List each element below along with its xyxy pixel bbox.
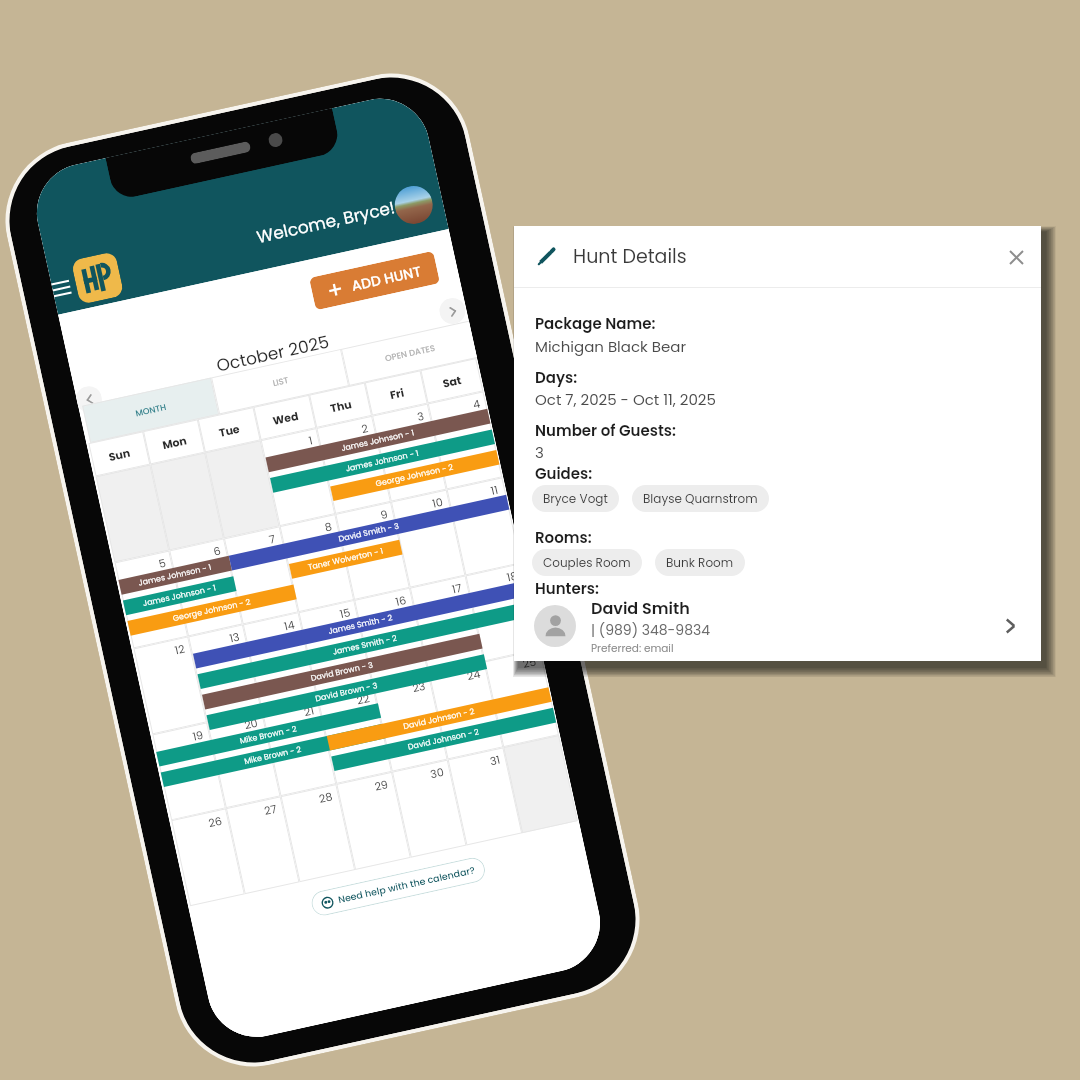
button[interactable]: Couples Room	[532, 549, 642, 576]
button[interactable]: Bryce Vogt	[532, 485, 619, 512]
button[interactable]: 21	[262, 698, 336, 796]
button[interactable]	[205, 440, 280, 538]
button[interactable]: 20	[207, 710, 281, 808]
button[interactable]: Bunk Room	[655, 549, 745, 576]
staticText: Wed	[271, 408, 300, 428]
button[interactable]: Need help with the calendar?	[309, 855, 487, 918]
staticText: James Johnson - 1	[340, 427, 416, 454]
button[interactable]: 22	[317, 686, 392, 784]
button[interactable]: 25	[484, 649, 559, 747]
button[interactable]: 28	[281, 784, 355, 882]
button[interactable]: 29	[336, 772, 411, 870]
button[interactable]: LIST	[211, 349, 349, 415]
button[interactable]: 3	[372, 403, 447, 502]
button[interactable]: 30	[392, 760, 467, 858]
button[interactable]: OPEN DATES	[341, 321, 477, 386]
button[interactable]: Blayse Quarnstrom	[632, 485, 769, 512]
button[interactable]: James Johnson - 1	[118, 556, 232, 595]
staticText: Taner Wolverton - 1	[307, 546, 385, 573]
staticText: 29	[373, 776, 390, 794]
button[interactable]: Close dialog	[999, 240, 1033, 274]
button[interactable]: David Johnson - 2	[331, 708, 556, 771]
button[interactable]: Next month	[437, 296, 468, 327]
button[interactable]: David Brown - 3	[206, 654, 487, 730]
staticText: 8	[323, 518, 333, 534]
button[interactable]: Previous month	[74, 384, 104, 414]
button[interactable]: Mike Brown - 2	[161, 724, 386, 787]
button[interactable]: 10	[391, 489, 465, 588]
button[interactable]: 23	[373, 674, 448, 772]
button[interactable]: David Johnson - 2	[327, 687, 552, 751]
staticText: Hunters:	[535, 578, 599, 599]
staticText: 26	[207, 812, 224, 830]
staticText: 28	[317, 788, 334, 806]
button[interactable]: 27	[226, 796, 299, 894]
button[interactable]: James Smith - 2	[193, 581, 528, 668]
button[interactable]: Home	[71, 251, 124, 305]
button[interactable]: George Johnson - 2	[127, 585, 297, 636]
button[interactable]: James Johnson - 1	[123, 576, 236, 615]
button[interactable]: 14	[243, 612, 317, 710]
staticText: 25	[521, 653, 538, 671]
staticText: David Brown - 3	[310, 659, 375, 684]
button[interactable]: Taner Wolverton - 1	[289, 540, 402, 579]
staticText: Mike Brown - 2	[243, 744, 303, 767]
staticText: 10	[431, 494, 445, 511]
staticText: 17	[450, 580, 463, 596]
button[interactable]: 5	[114, 550, 188, 648]
button[interactable]: 18	[465, 563, 540, 661]
staticText: 3	[416, 408, 426, 424]
staticText: OPEN DATES	[384, 342, 436, 364]
staticText: David Smith	[591, 597, 690, 619]
button[interactable]	[96, 464, 169, 562]
button[interactable]: 9	[335, 502, 410, 600]
staticText: Mike Brown - 2	[239, 723, 299, 747]
button[interactable]: 4	[428, 391, 502, 489]
button[interactable]: Open navigation menu	[49, 271, 79, 305]
button[interactable]: 16	[354, 588, 429, 686]
button[interactable]: 26	[171, 808, 245, 906]
staticText: Preferred: email	[591, 641, 674, 656]
button[interactable]: 8	[280, 514, 354, 612]
button[interactable]: 17	[410, 575, 484, 674]
button[interactable]: 13	[188, 624, 262, 722]
staticText: 21	[302, 702, 315, 719]
staticText: 23	[411, 678, 427, 695]
button[interactable]	[503, 735, 578, 833]
button[interactable]: 19	[152, 722, 226, 820]
button[interactable]: 6	[169, 538, 243, 636]
staticText: David Smith - 3	[338, 521, 400, 545]
staticText: Rooms:	[535, 527, 592, 548]
button[interactable]: 24	[429, 661, 503, 760]
staticText: Bryce Vogt	[543, 490, 608, 507]
button[interactable]: George Johnson - 2	[330, 450, 499, 501]
staticText: Hunt Details	[573, 243, 687, 270]
button[interactable]	[150, 452, 224, 550]
button[interactable]: David Smith	[534, 594, 1019, 658]
staticText: James Johnson - 1	[137, 562, 213, 589]
button[interactable]: James Johnson - 1	[270, 429, 495, 493]
button[interactable]: ADD HUNT	[309, 251, 440, 310]
button[interactable]: David Smith - 3	[229, 495, 509, 570]
button[interactable]: 11	[447, 477, 521, 575]
staticText: October 2025	[214, 329, 332, 378]
staticText: Michigan Black Bear	[535, 336, 686, 357]
button[interactable]: 12	[133, 636, 207, 734]
button[interactable]: Mike Brown - 2	[156, 703, 381, 767]
button[interactable]: David Brown - 3	[202, 634, 483, 709]
button[interactable]: 15	[298, 600, 373, 698]
staticText: Welcome, Bryce!	[254, 195, 397, 249]
staticText: 7	[267, 530, 278, 547]
staticText: 15	[338, 604, 352, 621]
button[interactable]: 7	[224, 526, 298, 624]
staticText: Need help with the calendar?	[337, 863, 476, 906]
button[interactable]: 31	[448, 747, 522, 845]
staticText: Sat	[441, 372, 463, 391]
staticText: 1	[307, 432, 314, 448]
button[interactable]: James Johnson - 1	[265, 409, 490, 472]
button[interactable]: 1	[261, 428, 335, 526]
button[interactable]: 2	[316, 416, 391, 514]
staticText: Guides:	[535, 463, 593, 484]
button[interactable]: James Smith - 2	[197, 601, 533, 689]
button[interactable]: MONTH	[82, 377, 219, 443]
